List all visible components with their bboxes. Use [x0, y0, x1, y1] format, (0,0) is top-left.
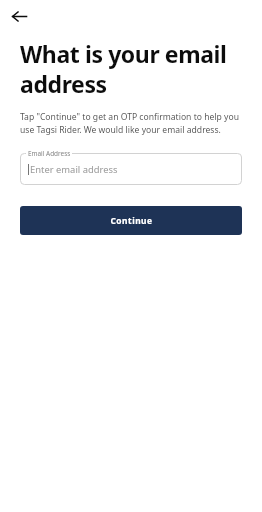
- staticText: Tap "Continue" to get an OTP confirmatio…: [20, 111, 248, 135]
- staticText: Continue: [110, 215, 153, 226]
- button[interactable]: Continue: [20, 206, 242, 235]
- staticText: Enter email address: [30, 163, 118, 176]
- staticText: Email Address: [28, 149, 71, 158]
- button[interactable]: Back: [6, 3, 32, 29]
- button[interactable]: Email Address: [20, 148, 242, 185]
- staticText: What is your email address: [20, 38, 240, 99]
